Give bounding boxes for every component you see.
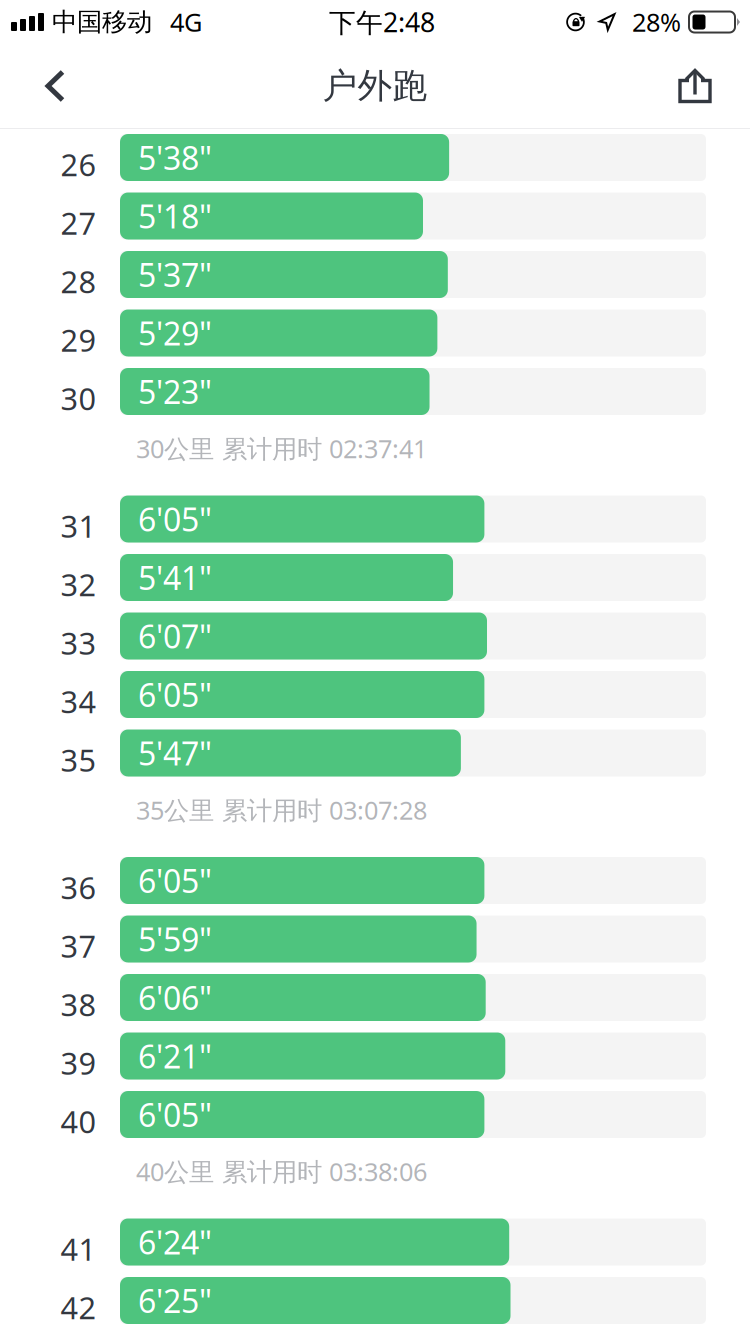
staticText: 6'06" bbox=[138, 976, 212, 1019]
staticText: 29 bbox=[60, 319, 96, 360]
staticText: 6'05" bbox=[138, 673, 212, 716]
staticText: 6'24" bbox=[138, 1221, 212, 1263]
staticText: 35 bbox=[60, 739, 96, 780]
button[interactable]: Share bbox=[656, 44, 734, 128]
staticText: 36 bbox=[60, 867, 96, 908]
staticText: 中国移动 bbox=[52, 6, 152, 37]
staticText: 38 bbox=[60, 984, 96, 1025]
staticText: 5'37" bbox=[138, 253, 212, 296]
staticText: 4G bbox=[170, 5, 202, 39]
staticText: 30 bbox=[60, 378, 96, 419]
staticText: 28% bbox=[632, 5, 681, 39]
staticText: 35公里 累计用时 03:07:28 bbox=[136, 793, 427, 827]
staticText: 5'47" bbox=[138, 732, 212, 774]
staticText: 27 bbox=[60, 202, 96, 243]
staticText: 40公里 累计用时 03:38:06 bbox=[136, 1154, 427, 1188]
staticText: 6'05" bbox=[138, 498, 212, 540]
staticText: 6'05" bbox=[138, 1093, 212, 1136]
staticText: 32 bbox=[60, 564, 96, 605]
staticText: 5'29" bbox=[138, 312, 212, 354]
staticText: 40 bbox=[60, 1101, 96, 1142]
staticText: 6'05" bbox=[138, 859, 212, 902]
staticText: 39 bbox=[60, 1042, 96, 1083]
button[interactable]: Back bbox=[19, 44, 91, 128]
staticText: 34 bbox=[60, 681, 96, 722]
staticText: 5'38" bbox=[138, 136, 212, 179]
staticText: 42 bbox=[60, 1287, 96, 1328]
staticText: 户外跑 bbox=[322, 65, 427, 107]
staticText: 5'23" bbox=[138, 370, 212, 413]
staticText: 31 bbox=[60, 505, 96, 546]
staticText: 5'59" bbox=[138, 918, 212, 960]
staticText: 28 bbox=[60, 261, 96, 302]
staticText: 5'18" bbox=[138, 195, 212, 237]
staticText: 26 bbox=[60, 144, 96, 185]
staticText: 33 bbox=[60, 622, 96, 663]
staticText: 6'07" bbox=[138, 615, 212, 657]
staticText: 6'25" bbox=[138, 1279, 212, 1322]
staticText: 41 bbox=[60, 1228, 96, 1269]
staticText: 5'41" bbox=[138, 556, 212, 599]
staticText: 37 bbox=[60, 925, 96, 966]
staticText: 下午2:48 bbox=[329, 4, 435, 40]
staticText: 30公里 累计用时 02:37:41 bbox=[136, 431, 427, 465]
staticText: 6'21" bbox=[138, 1035, 212, 1077]
